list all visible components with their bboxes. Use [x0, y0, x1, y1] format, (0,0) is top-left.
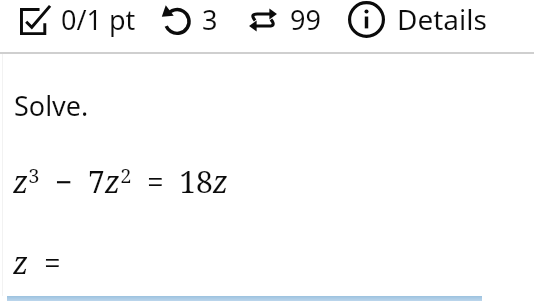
button[interactable]: 0/1 pt: [0, 1, 142, 38]
staticText: z =: [13, 242, 61, 283]
button[interactable]: New version: [243, 1, 323, 38]
button[interactable]: Attempts remaining: [158, 1, 220, 38]
button[interactable]: Details: [348, 0, 497, 38]
other: New version: [245, 5, 281, 35]
staticText: 99: [290, 1, 321, 38]
staticText: 3: [202, 1, 218, 38]
staticText: Solve.: [14, 87, 89, 124]
staticText: 0/1 pt: [61, 1, 136, 38]
other: Attempts remaining: [160, 3, 193, 36]
staticText: Details: [397, 0, 487, 38]
staticText: z3 − 7z2 = 18z: [13, 161, 229, 202]
button[interactable]: [7, 296, 482, 301]
